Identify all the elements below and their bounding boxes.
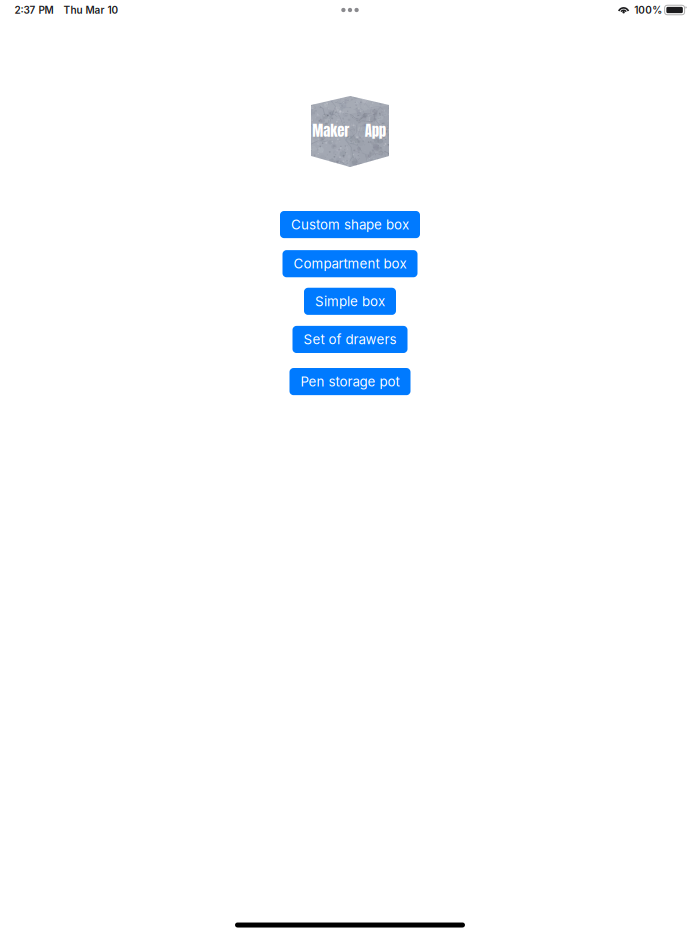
button[interactable]: Set of drawers: [292, 326, 407, 353]
staticText: Custom shape box: [291, 216, 409, 233]
staticText: Pen storage pot: [300, 373, 399, 390]
staticText: 2:37 PM: [14, 4, 53, 16]
staticText: Set of drawers: [303, 331, 396, 347]
staticText: Maker: [312, 119, 349, 142]
button[interactable]: Pen storage pot: [289, 368, 410, 395]
button[interactable]: Custom shape box: [280, 211, 420, 238]
button[interactable]: Simple box: [304, 288, 396, 315]
staticText: Thu Mar 10: [63, 4, 118, 16]
button[interactable]: Compartment box: [282, 250, 417, 277]
staticText: 100%: [634, 4, 662, 16]
staticText: App: [365, 119, 386, 142]
staticText: Compartment box: [293, 256, 406, 272]
staticText: Simple box: [315, 293, 385, 309]
